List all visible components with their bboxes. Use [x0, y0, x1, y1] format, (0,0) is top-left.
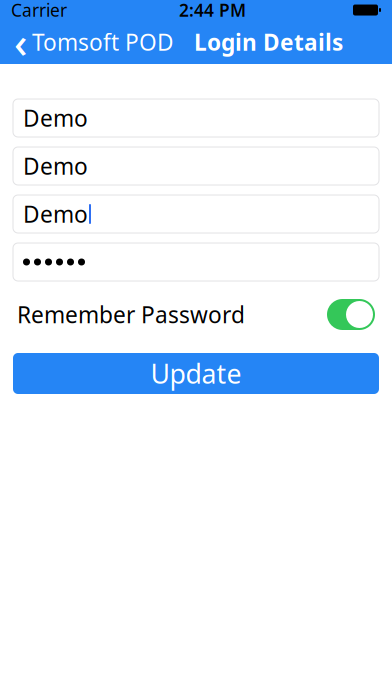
staticText: ‹ — [14, 15, 27, 69]
staticText: Carrier — [11, 0, 67, 21]
staticText: Remember Password — [17, 299, 245, 329]
staticText: Update — [150, 356, 241, 391]
staticText: Login Details — [194, 27, 343, 57]
staticText: Tomsoft POD — [32, 27, 174, 57]
button[interactable]: ‹ — [0, 20, 180, 64]
button[interactable]: Update — [13, 353, 379, 394]
staticText: Demo — [23, 199, 88, 229]
button[interactable]: Remember Password — [0, 299, 392, 330]
staticText: Demo — [23, 103, 88, 133]
staticText: Demo — [23, 151, 88, 181]
staticText: 2:44 PM — [179, 0, 246, 21]
